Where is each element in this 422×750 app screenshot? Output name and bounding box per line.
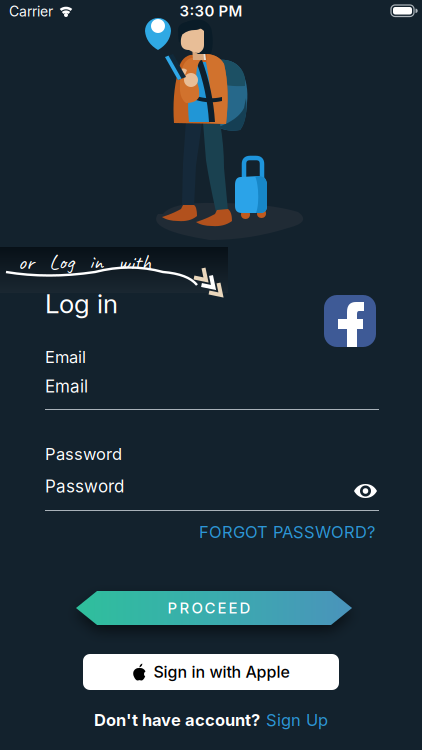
staticText: Password [45, 444, 122, 464]
staticText: Sign Up [266, 710, 328, 730]
button[interactable]: FORGOT PASSWORD? [199, 522, 375, 542]
staticText: Sign in with Apple [153, 662, 289, 682]
staticText: Password [45, 476, 124, 497]
staticText: PROCEED [167, 599, 250, 617]
button[interactable]: Sign in with Apple [83, 654, 339, 690]
button[interactable]: Sign Up [266, 710, 328, 730]
staticText: Email [45, 376, 88, 397]
staticText: Don't have account? [94, 710, 260, 730]
staticText: or Log in with [18, 248, 151, 276]
button[interactable]: Show password [354, 484, 377, 498]
button[interactable]: Log in with Facebook [324, 295, 376, 347]
staticText: 3:30 PM [179, 2, 242, 20]
staticText: Log in [45, 288, 118, 319]
staticText: Carrier [9, 3, 53, 20]
button[interactable]: PROCEED [76, 591, 352, 625]
staticText: FORGOT PASSWORD? [199, 522, 375, 542]
staticText: Email [45, 347, 86, 367]
